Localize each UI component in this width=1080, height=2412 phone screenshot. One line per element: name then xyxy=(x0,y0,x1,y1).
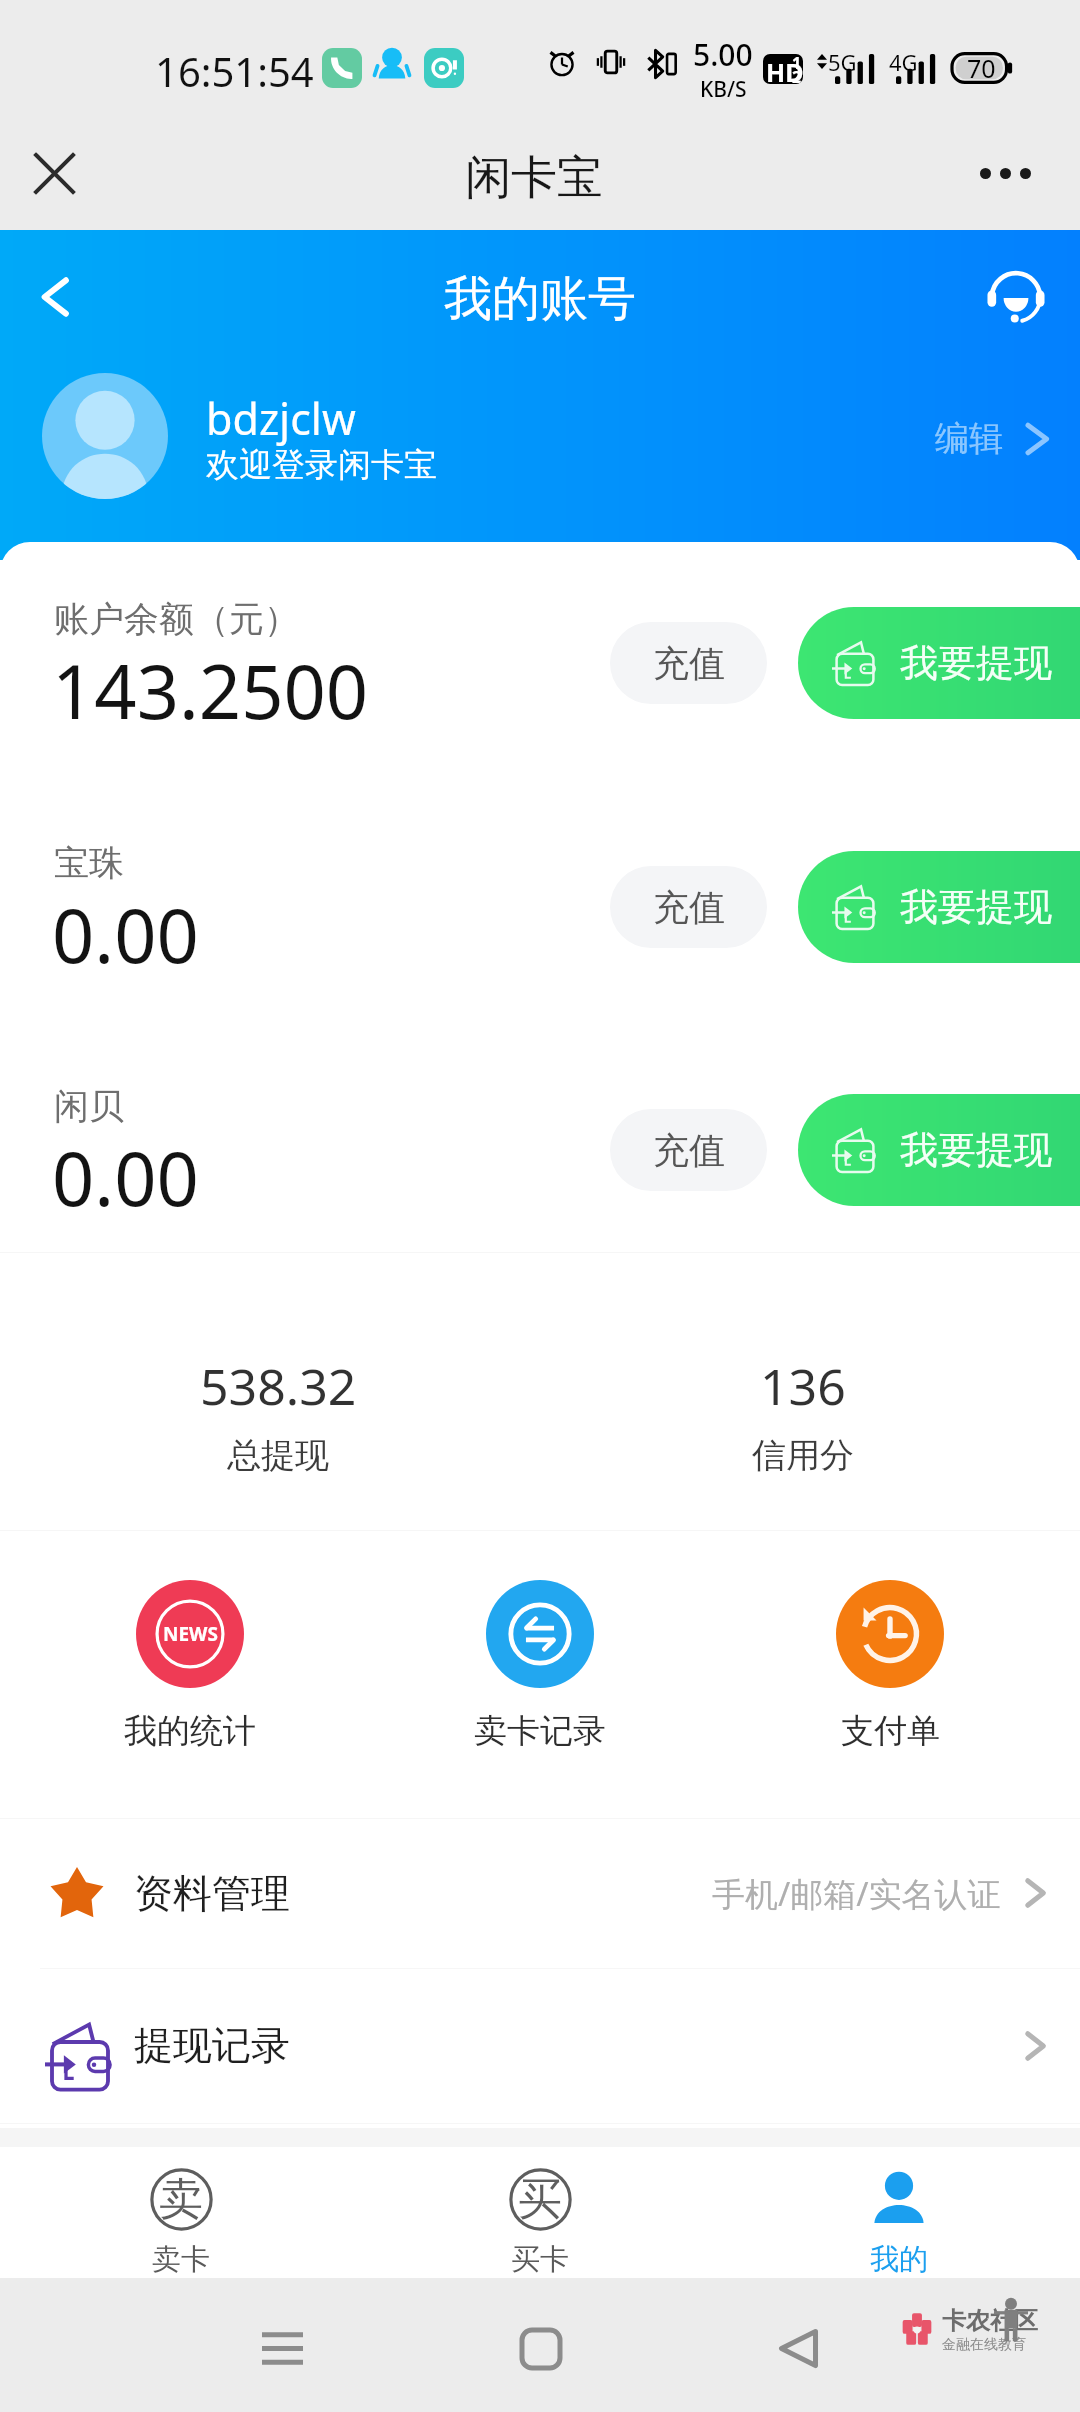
button[interactable]: Close xyxy=(18,137,90,209)
button[interactable]: 卖 xyxy=(91,2167,271,2278)
button[interactable]: 充值 xyxy=(610,866,767,948)
button[interactable]: 充值 xyxy=(610,622,767,704)
staticText: 我的 xyxy=(870,2241,928,2278)
button[interactable]: 136 xyxy=(623,1352,983,1477)
button[interactable]: 我的 xyxy=(809,2167,989,2278)
staticText: KB/S xyxy=(700,75,747,104)
staticText: 16:51:54 xyxy=(155,44,314,98)
button[interactable]: Home xyxy=(522,2330,560,2368)
staticText: 0.00 xyxy=(52,884,199,985)
staticText: 编辑 xyxy=(935,417,1003,460)
button[interactable]: 提现记录 xyxy=(0,1968,1080,2123)
staticText: 136 xyxy=(760,1352,846,1420)
staticText: 总提现 xyxy=(227,1434,329,1477)
staticText: HD xyxy=(766,55,803,84)
staticText: 信用分 xyxy=(752,1434,854,1477)
staticText: 我要提现 xyxy=(900,883,1052,931)
staticText: 金融在线教育 xyxy=(942,2336,1026,2354)
staticText: NEWS xyxy=(163,1621,218,1647)
button[interactable]: Back xyxy=(22,263,90,331)
staticText: 5.00 xyxy=(693,34,753,75)
staticText: 充值 xyxy=(653,641,725,686)
staticText: 欢迎登录闲卡宝 xyxy=(206,444,437,486)
button[interactable]: 我要提现 xyxy=(798,607,1080,719)
button[interactable]: 卖卡记录 xyxy=(450,1580,630,1752)
staticText: 卖 xyxy=(159,2172,203,2227)
button[interactable]: Customer service xyxy=(980,262,1052,334)
staticText: 4G xyxy=(889,47,918,77)
staticText: 0.00 xyxy=(52,1127,199,1228)
staticText: 我要提现 xyxy=(900,1126,1052,1174)
button[interactable]: 我要提现 xyxy=(798,851,1080,963)
staticText: 账户余额（元） xyxy=(54,597,299,641)
staticText: 2 xyxy=(792,66,802,84)
staticText: 充值 xyxy=(653,885,725,930)
staticText: 1 xyxy=(792,54,802,74)
button[interactable]: More options xyxy=(969,137,1041,209)
staticText: 卡农社区 xyxy=(942,2306,1038,2336)
button[interactable]: Back xyxy=(780,2330,817,2367)
staticText: 143.2500 xyxy=(52,640,369,741)
button[interactable]: NEWS xyxy=(100,1580,280,1752)
staticText: bdzjclw xyxy=(206,389,356,448)
staticText: 买卡 xyxy=(511,2241,569,2278)
button[interactable]: 我要提现 xyxy=(798,1094,1080,1206)
staticText: 我要提现 xyxy=(900,639,1052,687)
staticText: 我的账号 xyxy=(444,269,636,329)
staticText: 宝珠 xyxy=(54,841,124,885)
button[interactable]: 资料管理 xyxy=(0,1818,1080,1968)
staticText: 买 xyxy=(518,2172,562,2227)
button[interactable]: 支付单 xyxy=(800,1580,980,1752)
button[interactable]: 买 xyxy=(450,2167,630,2278)
staticText: 支付单 xyxy=(841,1710,940,1752)
staticText: 卖卡 xyxy=(152,2241,210,2278)
staticText: 538.32 xyxy=(200,1352,357,1420)
staticText: 充值 xyxy=(653,1128,725,1173)
button[interactable]: 538.32 xyxy=(98,1352,458,1477)
button[interactable]: 充值 xyxy=(610,1109,767,1191)
staticText: 提现记录 xyxy=(134,2021,290,2070)
staticText: 闲卡宝 xyxy=(465,149,603,207)
staticText: 资料管理 xyxy=(134,1869,290,1918)
staticText: 闲贝 xyxy=(54,1084,124,1128)
staticText: 卖卡记录 xyxy=(474,1710,606,1752)
staticText: 我的统计 xyxy=(124,1710,256,1752)
staticText: 5G xyxy=(828,47,857,77)
button[interactable]: Recents xyxy=(262,2332,303,2365)
staticText: 70 xyxy=(967,51,996,85)
button[interactable]: 编辑 xyxy=(929,411,1058,466)
staticText: 手机/邮箱/实名认证 xyxy=(712,1871,1001,1916)
